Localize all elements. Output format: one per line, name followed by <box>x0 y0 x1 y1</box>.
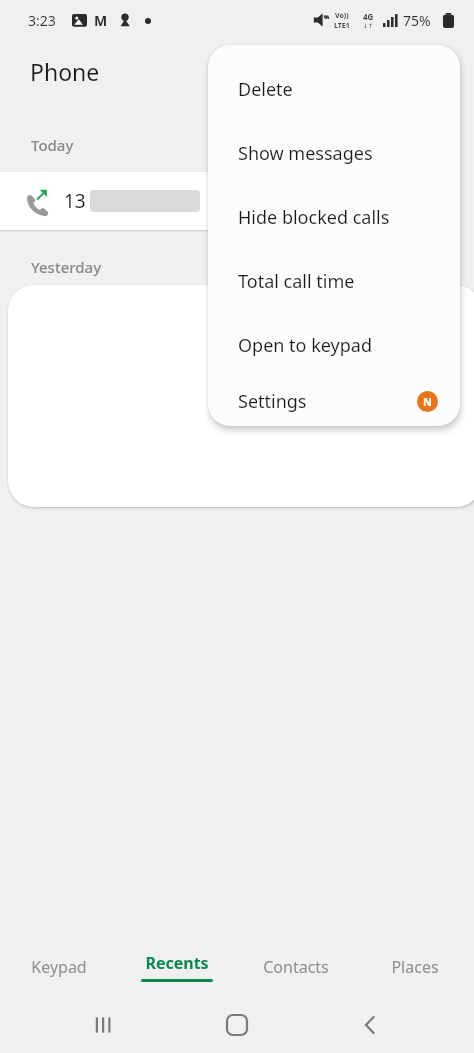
staticText: 4G <box>363 11 374 22</box>
staticText: Phone <box>30 56 100 87</box>
staticText: Keypad <box>31 956 87 978</box>
staticText: Recents <box>145 952 209 974</box>
staticText: LTE1 <box>334 21 350 31</box>
staticText: 13 <box>64 188 86 214</box>
staticText: Settings <box>238 389 307 414</box>
staticText: Today <box>31 135 74 155</box>
button[interactable] <box>8 285 474 507</box>
staticText: ↓↑ <box>363 22 374 29</box>
staticText: Total call time <box>238 269 355 294</box>
staticText: 75% <box>403 11 431 30</box>
button[interactable]: Contacts <box>236 950 355 984</box>
button[interactable]: Recent apps <box>77 997 133 1053</box>
button[interactable]: Home <box>209 997 265 1053</box>
button[interactable]: Hide blocked calls <box>208 185 460 249</box>
button[interactable]: Back <box>342 997 398 1053</box>
staticText: N <box>423 394 432 409</box>
staticText: Contacts <box>263 956 329 978</box>
button[interactable]: Keypad <box>0 950 118 984</box>
button[interactable]: Places <box>355 950 474 984</box>
staticText: Yesterday <box>31 257 102 277</box>
staticText: Places <box>391 956 439 978</box>
button[interactable]: Open to keypad <box>208 313 460 377</box>
staticText: Hide blocked calls <box>238 205 390 230</box>
button[interactable]: 13 <box>0 172 260 230</box>
button[interactable]: Delete <box>208 57 460 121</box>
staticText: Show messages <box>238 141 373 166</box>
button[interactable]: Show messages <box>208 121 460 185</box>
staticText: 3:23 <box>28 11 56 30</box>
staticText: Open to keypad <box>238 333 372 358</box>
staticText: M <box>94 11 108 30</box>
staticText: Delete <box>238 77 293 102</box>
button[interactable]: Settings <box>208 377 460 426</box>
button[interactable]: Recents <box>118 946 236 988</box>
staticText: Vo)) <box>335 11 349 21</box>
button[interactable]: Total call time <box>208 249 460 313</box>
